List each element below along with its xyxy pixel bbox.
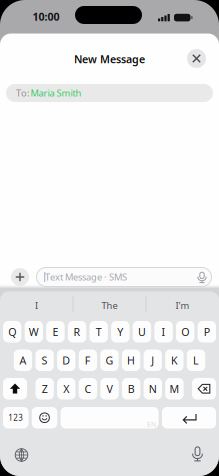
staticText: New Message xyxy=(74,52,145,66)
button[interactable]: I xyxy=(154,321,173,342)
button[interactable]: V xyxy=(100,378,119,399)
button[interactable]: F xyxy=(79,349,97,371)
button[interactable]: P xyxy=(198,321,216,342)
button[interactable]: I xyxy=(1,295,71,315)
staticText: L xyxy=(193,353,199,367)
button[interactable]: E xyxy=(46,321,65,342)
button[interactable]: Text Message · SMS xyxy=(36,267,212,287)
button[interactable]: R xyxy=(68,321,86,342)
staticText: P xyxy=(204,325,210,339)
staticText: S xyxy=(42,353,48,367)
staticText: D xyxy=(62,353,70,367)
button[interactable] xyxy=(32,407,57,428)
button[interactable]: Z xyxy=(35,378,54,399)
staticText: C xyxy=(84,382,91,396)
button[interactable]: U xyxy=(133,321,151,342)
button[interactable]: X xyxy=(57,378,75,399)
button[interactable]: A xyxy=(14,349,32,371)
button[interactable] xyxy=(13,447,29,463)
staticText: E xyxy=(52,325,58,339)
staticText: A xyxy=(19,353,26,367)
staticText: U xyxy=(138,325,146,339)
staticText: Text Message · SMS xyxy=(45,271,127,283)
button[interactable]: H xyxy=(122,349,140,371)
button[interactable]: 123 xyxy=(3,407,28,428)
staticText: H xyxy=(127,353,135,367)
staticText: V xyxy=(107,382,113,396)
staticText: Z xyxy=(42,382,48,396)
staticText: B xyxy=(128,382,135,396)
button[interactable]: O xyxy=(176,321,194,342)
staticText: N xyxy=(149,382,157,396)
button[interactable]: G xyxy=(100,349,119,371)
staticText: G xyxy=(105,353,113,367)
button[interactable] xyxy=(188,444,206,463)
button[interactable]: C xyxy=(79,378,97,399)
button[interactable] xyxy=(3,378,27,399)
staticText: T xyxy=(96,325,102,339)
button[interactable]: To: xyxy=(6,84,213,102)
staticText: EN xyxy=(147,420,156,429)
staticText: M xyxy=(169,382,179,396)
button[interactable] xyxy=(192,378,216,399)
staticText: K xyxy=(171,353,178,367)
staticText: Q xyxy=(8,325,16,339)
button[interactable]: Y xyxy=(111,321,129,342)
button[interactable]: D xyxy=(57,349,75,371)
button[interactable]: EN xyxy=(61,407,159,428)
button[interactable] xyxy=(11,268,29,286)
staticText: Y xyxy=(117,325,123,339)
button[interactable]: S xyxy=(35,349,54,371)
staticText: Maria Smith xyxy=(30,87,81,99)
button[interactable]: L xyxy=(187,349,205,371)
button[interactable]: W xyxy=(25,321,43,342)
staticText: X xyxy=(63,382,69,396)
button[interactable]: B xyxy=(122,378,140,399)
staticText: The xyxy=(101,299,117,312)
staticText: I'm xyxy=(175,299,189,312)
staticText: 123 xyxy=(8,412,23,423)
staticText: R xyxy=(74,325,81,339)
staticText: J xyxy=(151,353,154,367)
button[interactable]: J xyxy=(144,349,162,371)
staticText: I xyxy=(162,325,166,339)
button[interactable]: M xyxy=(165,378,184,399)
button[interactable] xyxy=(187,49,206,68)
button[interactable]: Q xyxy=(3,321,21,342)
button[interactable]: N xyxy=(144,378,162,399)
staticText: W xyxy=(29,325,39,339)
staticText: F xyxy=(85,353,91,367)
button[interactable] xyxy=(162,407,216,428)
button[interactable]: I'm xyxy=(147,295,217,315)
button[interactable]: K xyxy=(165,349,183,371)
staticText: I xyxy=(35,299,38,312)
staticText: 10:00 xyxy=(32,9,59,24)
staticText: To: xyxy=(16,87,30,99)
staticText: O xyxy=(181,325,189,339)
button[interactable]: T xyxy=(89,321,108,342)
button[interactable]: The xyxy=(74,295,144,315)
